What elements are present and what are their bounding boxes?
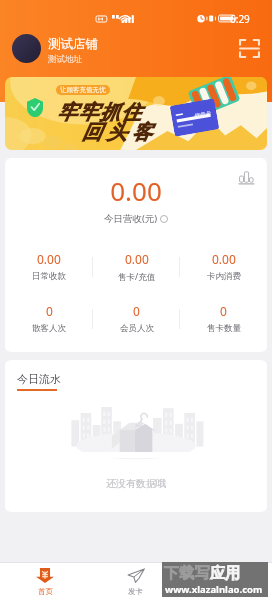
button[interactable]: 0	[180, 303, 267, 335]
button[interactable]: 我的	[181, 563, 272, 600]
staticText: 0.00	[37, 251, 61, 267]
staticText: 牢牢抓住	[57, 100, 143, 125]
button[interactable]: 0	[93, 303, 180, 335]
staticText: 0	[46, 303, 53, 319]
staticText: www.xlazalnlao.com	[165, 583, 263, 596]
staticText: 回头客	[79, 120, 154, 145]
staticText: 6:29	[230, 12, 250, 26]
staticText: 储值卡	[194, 110, 212, 120]
staticText: 0	[133, 303, 140, 319]
staticText: 让顾客充值无忧	[60, 86, 106, 94]
staticText: 今日营收(元)	[104, 212, 158, 225]
button[interactable]: 0.00	[180, 251, 267, 283]
staticText: 会员人次	[120, 323, 154, 334]
button[interactable]: 让顾客充值无忧	[5, 77, 267, 150]
staticText: 卡内消费	[207, 271, 241, 282]
button[interactable]: Shop avatar	[12, 34, 41, 63]
staticText: 0.00	[5, 173, 267, 208]
button[interactable]: 首页	[0, 563, 90, 600]
staticText: 售卡数量	[207, 323, 241, 334]
staticText: 日常收款	[32, 271, 66, 282]
staticText: 还没有数据哦	[106, 477, 166, 490]
button[interactable]: 0	[5, 303, 93, 335]
button[interactable]: 0.00	[5, 251, 93, 283]
button[interactable]: Statistics report	[238, 170, 254, 186]
staticText: 0.00	[125, 251, 149, 267]
staticText: 散客人次	[32, 323, 66, 334]
staticText: 今日流水	[17, 372, 61, 386]
staticText: 售卡/充值	[118, 271, 156, 283]
staticText: 0	[220, 303, 227, 319]
staticText: 发卡	[128, 587, 143, 596]
button[interactable]: Scan QR code	[236, 35, 262, 61]
staticText: 测试店铺	[48, 36, 98, 52]
staticText: 首页	[38, 587, 53, 596]
button[interactable]: 0.00	[93, 251, 180, 283]
staticText: 测试地址	[48, 54, 82, 65]
button[interactable]: 发卡	[90, 563, 181, 600]
staticText: 0.00	[212, 251, 236, 267]
staticText: 下载写	[164, 564, 210, 583]
staticText: 应用	[210, 564, 241, 583]
staticText: 我的	[219, 587, 234, 596]
